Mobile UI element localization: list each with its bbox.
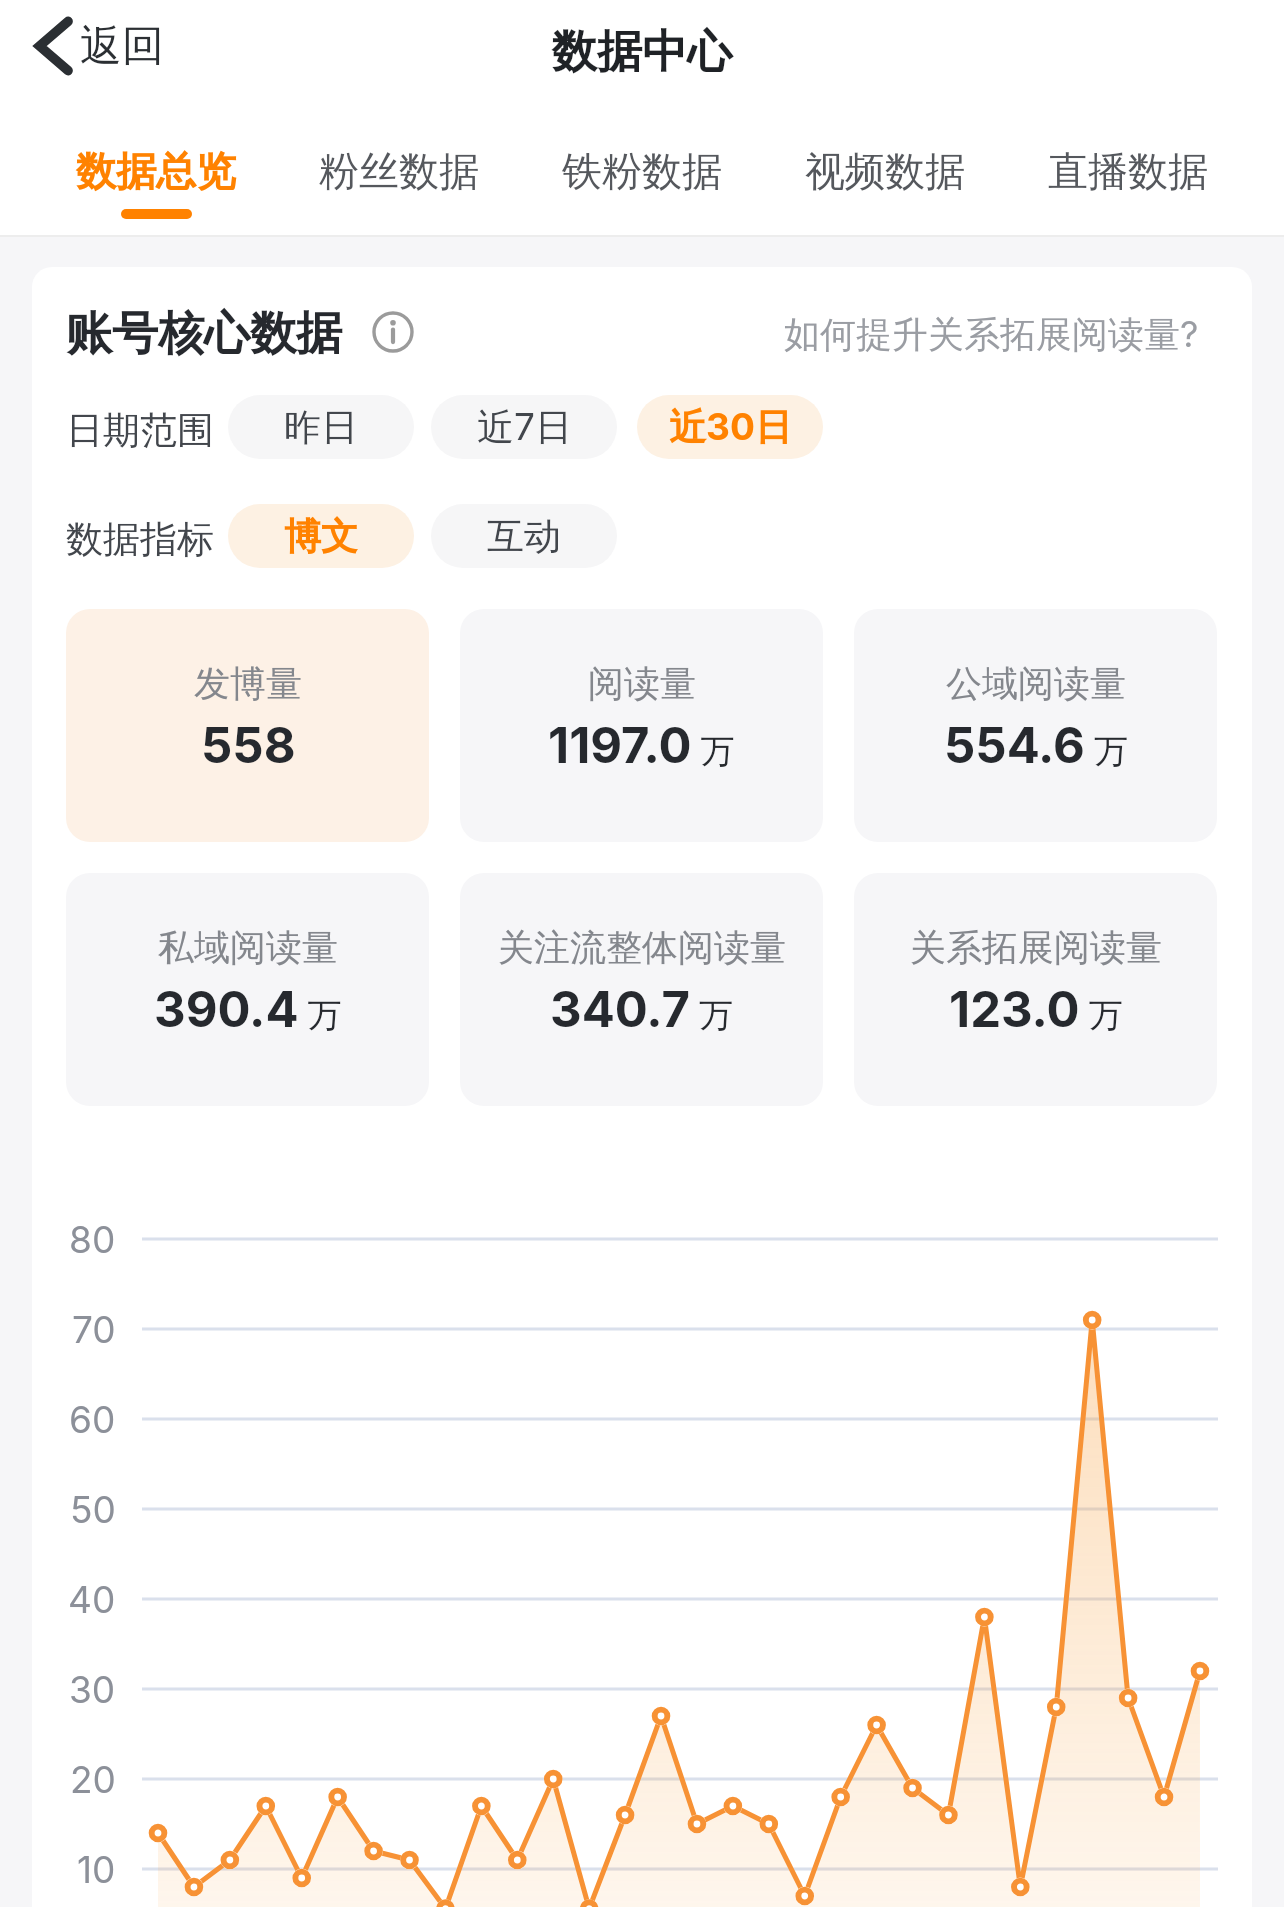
button[interactable]: 关系拓展阅读量 [854,873,1217,1106]
staticText: 50 [70,1487,116,1532]
staticText: 日期范围 [66,407,214,454]
staticText: 40 [68,1577,116,1622]
staticText: 近30日 [669,404,792,451]
button[interactable]: 互动 [431,504,617,568]
staticText: 近7日 [477,404,572,451]
button[interactable]: 关注流整体阅读量 [460,873,823,1106]
staticText: 关注流整体阅读量 [498,925,786,970]
button[interactable]: 近30日 [637,395,823,459]
staticText: 数据指标 [66,516,214,563]
button[interactable]: 铁粉数据 [562,146,722,219]
staticText: 340.7 万 [550,980,734,1039]
staticText: 账号核心数据 [66,305,342,363]
button[interactable]: 视频数据 [805,146,965,219]
staticText: 60 [69,1397,116,1442]
staticText: 关系拓展阅读量 [910,925,1162,970]
button[interactable]: 阅读量 [460,609,823,842]
staticText: 昨日 [284,404,358,451]
staticText: 1197.0 万 [548,716,735,775]
staticText: 20 [70,1757,116,1802]
staticText: 返回 [80,20,164,73]
staticText: 70 [72,1307,116,1352]
staticText: 554.6 万 [944,716,1128,775]
staticText: 发博量 [194,661,302,706]
button[interactable]: 数据总览 [76,146,236,219]
staticText: 铁粉数据 [562,146,722,196]
button[interactable]: 如何提升关系拓展阅读量? [784,312,1199,358]
staticText: 私域阅读量 [158,925,338,970]
staticText: 阅读量 [588,661,696,706]
staticText: 直播数据 [1048,146,1208,196]
staticText: 数据中心 [552,24,732,81]
staticText: 如何提升关系拓展阅读量? [784,312,1199,358]
staticText: 30 [69,1667,116,1712]
button[interactable]: 私域阅读量 [66,873,429,1106]
staticText: 公域阅读量 [946,661,1126,706]
staticText: 123.0 万 [949,980,1123,1039]
button[interactable]: 昨日 [228,395,414,459]
button[interactable]: 发博量 [66,609,429,842]
staticText: 视频数据 [805,146,965,196]
button[interactable]: 返回 [32,14,164,78]
staticText: 博文 [284,513,358,560]
staticText: 数据总览 [76,146,236,196]
staticText: 10 [77,1847,116,1892]
staticText: 粉丝数据 [319,146,479,196]
button[interactable]: 近7日 [431,395,617,459]
button[interactable]: 公域阅读量 [854,609,1217,842]
button[interactable]: 粉丝数据 [319,146,479,219]
staticText: 558 [201,716,296,775]
button[interactable]: 直播数据 [1048,146,1208,219]
staticText: 互动 [487,513,561,560]
button[interactable]: 博文 [228,504,414,568]
staticText: 80 [69,1217,116,1262]
staticText: 390.4 万 [154,980,342,1039]
